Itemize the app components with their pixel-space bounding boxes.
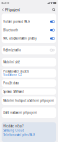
staticText: NFC a bezkontaktní platby — [3, 37, 36, 40]
staticText: Vodafone CZ — [3, 73, 22, 77]
button[interactable]: Samsung Cloud — [3, 129, 24, 132]
button[interactable]: Volání pomocí Wi-Fi — [2, 17, 56, 26]
staticText: 87 — [54, 2, 56, 4]
button[interactable]: Back — [1, 6, 5, 13]
staticText: Poskytovatel služeb — [3, 70, 29, 73]
staticText: Použít data — [3, 81, 18, 85]
button[interactable]: Telefonování přes Wi-Fi — [3, 133, 35, 137]
button[interactable]: Správce SIM karet — [2, 88, 56, 95]
staticText: Mobilní hotspot a Sdílení připojení — [3, 99, 54, 102]
button[interactable]: Mobilní sítě — [2, 58, 56, 66]
staticText: Režim Letadlo — [3, 48, 21, 52]
staticText: Mobilní sítě — [3, 60, 20, 64]
staticText: Správce SIM karet — [3, 90, 24, 93]
button[interactable]: Další nastavení připojení — [2, 107, 56, 118]
staticText: Připojení — [5, 7, 20, 12]
button[interactable]: Mobilní hotspot a Sdílení připojení — [2, 96, 56, 105]
button[interactable]: Bluetooth — [2, 26, 56, 34]
button[interactable]: Search — [51, 6, 56, 13]
staticText: Telefonování přes Wi-Fi — [3, 133, 35, 137]
staticText: Bluetooth — [3, 28, 18, 32]
staticText: Samsung Cloud — [3, 129, 24, 132]
staticText: Další nastavení připojení — [3, 111, 37, 114]
button[interactable]: Režim Letadlo — [2, 46, 56, 54]
staticText: Volání pomocí Wi-Fi — [3, 20, 30, 23]
button[interactable]: Použít data — [2, 79, 56, 87]
button[interactable]: NFC a bezkontaktní platby — [2, 34, 56, 43]
staticText: Hledáte něco? — [3, 124, 23, 128]
button[interactable]: Poskytovatel služeb — [2, 69, 56, 78]
